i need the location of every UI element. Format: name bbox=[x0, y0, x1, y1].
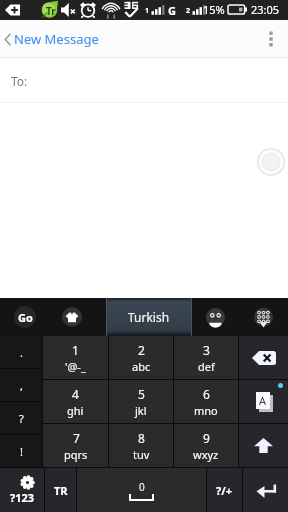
button[interactable]: 7 bbox=[43, 424, 108, 467]
button[interactable]: Keyboard layouts bbox=[238, 298, 288, 336]
staticText: Turkish bbox=[128, 309, 170, 325]
staticText: 7 bbox=[73, 430, 80, 446]
staticText: ? bbox=[19, 411, 24, 426]
button[interactable]: Emoji bbox=[192, 298, 238, 336]
staticText: mno bbox=[194, 403, 218, 418]
staticText: abc bbox=[132, 359, 151, 374]
staticText: '@-_ bbox=[65, 359, 86, 374]
staticText: 6 bbox=[203, 386, 210, 402]
button[interactable]: 9 bbox=[174, 424, 238, 467]
staticText: Tr bbox=[46, 4, 56, 18]
staticText: 8 bbox=[138, 430, 145, 446]
button[interactable]: ?/+ bbox=[207, 468, 242, 512]
button[interactable]: 2 bbox=[109, 336, 173, 379]
button[interactable]: 4 bbox=[43, 380, 108, 423]
staticText: pqrs bbox=[64, 447, 88, 462]
button[interactable]: , bbox=[0, 369, 42, 401]
staticText: 1 bbox=[145, 6, 150, 16]
staticText: 1 bbox=[72, 342, 79, 358]
staticText: def bbox=[198, 359, 215, 374]
button[interactable]: 8 bbox=[109, 424, 173, 467]
staticText: ?123 bbox=[10, 490, 35, 505]
button[interactable]: 1 bbox=[43, 336, 108, 379]
staticText: ghi bbox=[67, 403, 84, 418]
button[interactable]: . bbox=[0, 336, 42, 368]
button[interactable]: Input mode bbox=[239, 380, 288, 423]
button[interactable]: ? bbox=[0, 402, 42, 434]
staticText: Go bbox=[18, 310, 33, 325]
staticText: 15% bbox=[203, 2, 225, 17]
staticText: 0 bbox=[139, 480, 145, 494]
staticText: G bbox=[168, 3, 176, 18]
staticText: ! bbox=[20, 444, 23, 459]
staticText: tuv bbox=[133, 447, 150, 462]
button[interactable]: 5 bbox=[109, 380, 173, 423]
staticText: , bbox=[20, 378, 23, 393]
button[interactable]: TR bbox=[45, 468, 76, 512]
button[interactable]: ?123 bbox=[0, 468, 44, 512]
button[interactable]: ! bbox=[0, 435, 42, 467]
staticText: 23:05 bbox=[251, 2, 280, 17]
button[interactable]: More options bbox=[254, 20, 288, 58]
button[interactable]: New Message bbox=[0, 20, 109, 58]
button[interactable]: Enter bbox=[243, 468, 288, 512]
staticText: TR bbox=[54, 483, 68, 498]
staticText: 9 bbox=[203, 430, 210, 446]
button[interactable]: Google search bbox=[0, 298, 50, 336]
staticText: 2 bbox=[186, 6, 191, 16]
staticText: 4 bbox=[72, 386, 79, 402]
staticText: 5 bbox=[138, 386, 145, 402]
button[interactable]: Backspace bbox=[239, 336, 288, 379]
button[interactable]: 6 bbox=[174, 380, 238, 423]
staticText: wxyz bbox=[193, 447, 219, 462]
button[interactable]: Space bbox=[77, 468, 206, 512]
staticText: New Message bbox=[14, 30, 99, 48]
staticText: To: bbox=[11, 73, 28, 89]
staticText: 2 bbox=[138, 342, 145, 358]
button[interactable]: Theme bbox=[50, 298, 94, 336]
staticText: 3 bbox=[203, 342, 210, 358]
staticText: jkl bbox=[135, 403, 147, 418]
button[interactable]: 3 bbox=[174, 336, 238, 379]
button[interactable]: Shift bbox=[239, 424, 288, 467]
button[interactable]: Turkish bbox=[106, 298, 192, 336]
button[interactable]: To: bbox=[0, 58, 288, 103]
staticText: ?/+ bbox=[216, 483, 233, 498]
staticText: A bbox=[259, 393, 267, 408]
staticText: . bbox=[20, 345, 23, 360]
